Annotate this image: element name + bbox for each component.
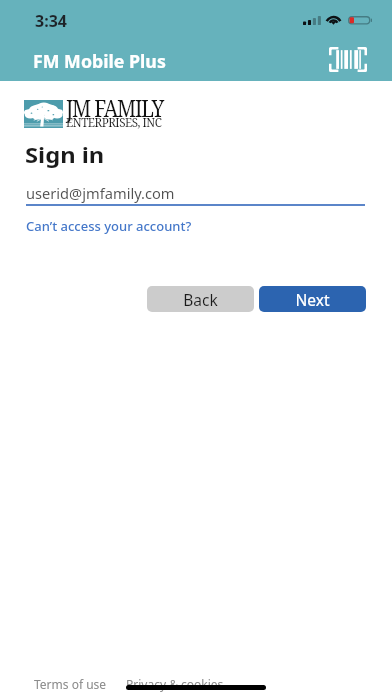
staticText: Can’t access your account? <box>26 217 192 235</box>
button[interactable]: Scan barcode <box>329 46 367 72</box>
staticText: Sign in <box>25 141 105 170</box>
button[interactable]: Can’t access your account? <box>26 217 192 235</box>
staticText: Next <box>295 289 330 310</box>
button[interactable]: Terms of use <box>34 676 107 692</box>
staticText: Terms of use <box>34 676 107 692</box>
staticText: Back <box>183 289 218 310</box>
button[interactable]: Back <box>147 286 254 312</box>
staticText: FM Mobile Plus <box>33 50 167 73</box>
staticText: 3:34 <box>35 10 67 32</box>
staticText: Privacy & cookies <box>126 676 224 692</box>
button[interactable]: Next <box>259 286 366 312</box>
staticText: ENTERPRISES, INC <box>66 113 162 131</box>
staticText: JM FAMILY <box>66 92 164 123</box>
staticText: userid@jmfamily.com <box>26 184 175 203</box>
button[interactable]: Privacy & cookies <box>126 676 224 692</box>
